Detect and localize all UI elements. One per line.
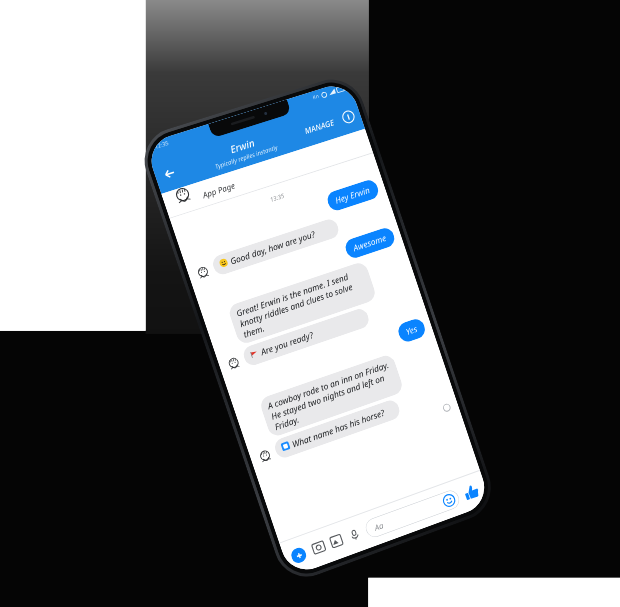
button[interactable]: Info [330, 97, 365, 136]
staticText: Yes [404, 323, 419, 338]
button[interactable]: Camera [310, 538, 327, 557]
button[interactable]: App Page [161, 129, 373, 219]
staticText: Good day, how are you? [229, 228, 317, 267]
button[interactable]: What name has his horse? [272, 398, 402, 460]
staticText: Kn [312, 92, 321, 101]
staticText: 12:35 [154, 139, 170, 150]
button[interactable]: Great! Erwin is the name. I send knotty … [227, 260, 378, 346]
button[interactable]: Emoji [441, 492, 457, 509]
staticText: Great! Erwin is the name. I send knotty … [235, 266, 370, 340]
staticText: Awesome [352, 232, 388, 254]
staticText: Are you ready? [259, 329, 315, 358]
staticText: 13:35 [269, 192, 286, 204]
button[interactable]: Are you ready? [241, 306, 371, 368]
button[interactable]: Awesome [343, 226, 397, 260]
button[interactable]: More actions [289, 546, 308, 565]
button[interactable]: Voice message [345, 526, 363, 544]
staticText: Erwin [228, 135, 257, 156]
button[interactable]: Good day, how are you? [210, 217, 341, 277]
staticText: Typically replies instantly [214, 143, 280, 171]
button[interactable]: Aa [363, 488, 462, 540]
button[interactable]: Erwin [179, 120, 308, 180]
button[interactable]: Send like [461, 481, 482, 503]
button[interactable]: Hey Erwin [325, 178, 381, 213]
button[interactable]: MANAGE [303, 116, 336, 136]
button[interactable]: Yes [396, 317, 428, 344]
button[interactable]: Back [150, 153, 188, 194]
button[interactable]: Photos [328, 532, 345, 550]
staticText: MANAGE [303, 116, 336, 136]
staticText: Aa [373, 519, 385, 533]
staticText: A cowboy rode to an inn on Friday. He st… [266, 359, 397, 432]
staticText: Hey Erwin [334, 184, 372, 207]
button[interactable]: A cowboy rode to an inn on Friday. He st… [258, 353, 405, 438]
staticText: What name has his horse? [290, 407, 386, 450]
staticText: App Page [201, 179, 237, 200]
